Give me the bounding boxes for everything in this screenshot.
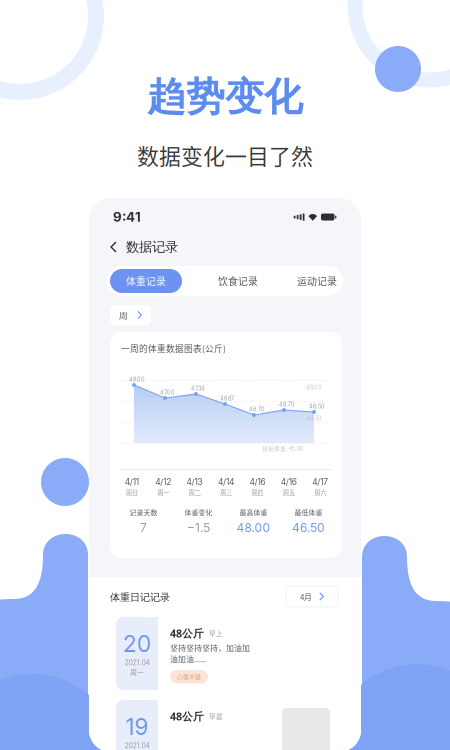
staticText: 4/11 [125,477,139,487]
staticText: 早晨 [209,711,223,721]
staticText: 4/16 [249,477,265,487]
staticText: 46.70 [249,406,265,413]
staticText: 20 [123,630,151,657]
button[interactable]: 20 [116,617,338,690]
staticText: 48.00 [236,520,270,535]
staticText: 目标体重: 45.00 [262,444,303,452]
staticText: 周四 [251,488,263,497]
button[interactable]: 运动记录 [294,269,340,293]
staticText: 4月 [300,591,312,602]
staticText: 4/14 [218,477,234,487]
staticText: 48公斤 [170,709,204,723]
staticText: 周二 [189,488,201,497]
staticText: 早上 [209,628,223,638]
staticText: 体重日记记录 [110,591,170,604]
staticText: 周 [119,309,128,321]
staticText: 体重记录 [126,274,166,288]
button[interactable]: 19 [116,700,338,750]
staticText: 7 [140,520,147,535]
staticText: 4/17 [312,477,328,487]
staticText: 油加油...... [170,653,206,664]
staticText: 记录天数 [129,507,157,517]
staticText: 数据变化一目了然 [137,139,313,171]
button[interactable]: 饮食记录 [215,269,261,293]
staticText: 19 [125,713,148,740]
staticText: 4/16 [281,477,297,487]
button[interactable]: 周 [110,305,151,325]
staticText: 周一 [130,667,144,677]
staticText: 46.87 [220,395,234,402]
staticText: 周日 [126,488,138,497]
staticText: 46.50 [292,520,325,535]
staticText: 周一 [157,488,169,497]
button[interactable]: 数据记录 [89,234,361,260]
staticText: 46.50 [306,415,322,422]
staticText: 48公斤 [170,626,204,640]
staticText: 2021.04 [124,741,149,750]
staticText: 最低体重 [294,507,322,517]
button[interactable]: 体重记录 [110,269,182,293]
staticText: 趋势变化 [147,73,303,121]
staticText: 体重变化 [184,507,212,517]
staticText: 4/13 [187,477,203,487]
staticText: 周六 [314,488,326,497]
staticText: 一周的体重数据图表(公斤) [121,342,226,354]
button[interactable]: 4月 [286,586,338,607]
staticText: 46.70 [279,401,295,408]
staticText: 坚持坚持坚持，加油加 [170,642,250,653]
staticText: 运动记录 [297,274,337,288]
staticText: 周三 [220,488,232,497]
staticText: 周五 [283,488,295,497]
staticText: 饮食记录 [218,274,258,288]
staticText: 47.00 [160,389,175,396]
staticText: 9:41 [113,209,141,225]
staticText: 最高体重 [239,507,267,517]
staticText: 数据记录 [126,239,178,255]
staticText: 2021.04 [124,658,149,667]
staticText: 4/12 [155,477,171,487]
staticText: −1.5 [187,520,210,535]
staticText: 48.00 [306,384,322,391]
staticText: 46.50 [309,403,325,410]
staticText: 48.00 [129,376,145,383]
staticText: 47.34 [191,385,205,392]
staticText: 心情不错 [177,672,201,681]
